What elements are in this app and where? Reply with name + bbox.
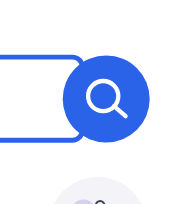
- button[interactable]: Participants: [49, 177, 147, 204]
- button[interactable]: Search: [63, 56, 150, 143]
- button[interactable]: Search field: [0, 54, 88, 144]
